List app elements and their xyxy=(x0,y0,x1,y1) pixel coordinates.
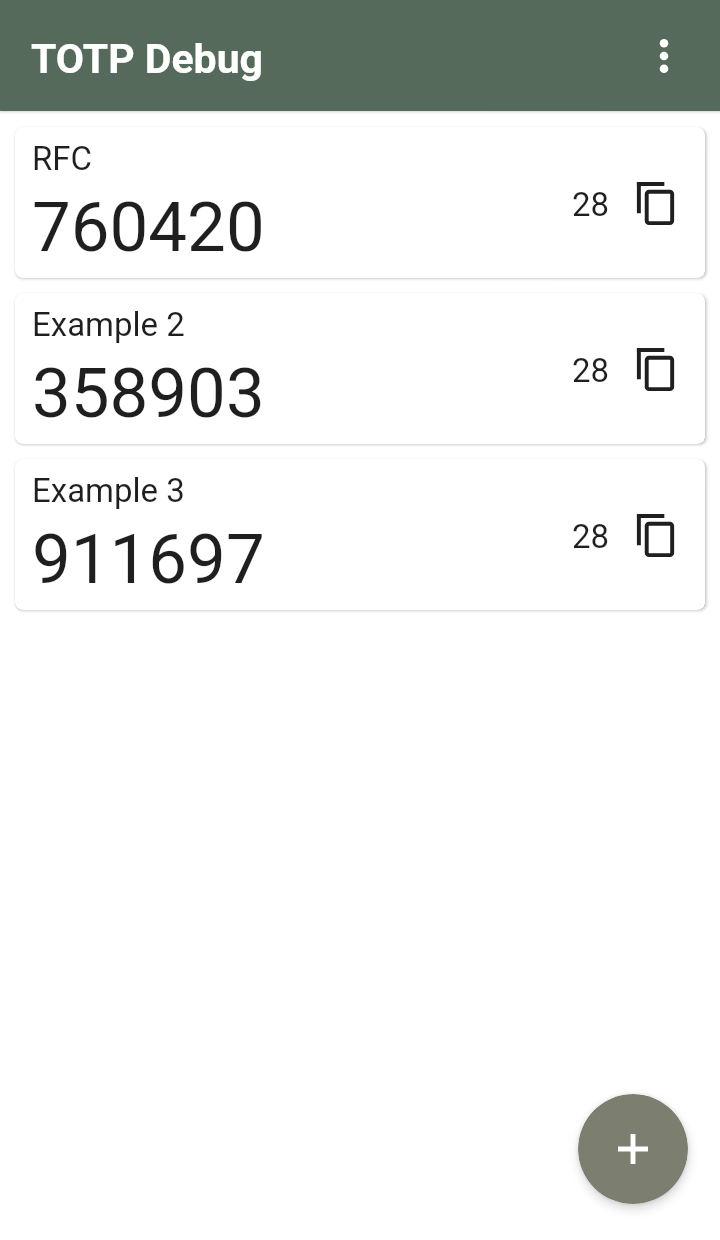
staticText: 28 xyxy=(572,185,610,224)
button[interactable]: Example 2 xyxy=(15,293,705,444)
button[interactable]: Copy code xyxy=(626,505,686,565)
staticText: 28 xyxy=(572,517,610,556)
staticText: 911697 xyxy=(32,519,265,600)
staticText: Example 3 xyxy=(32,471,185,510)
staticText: 358903 xyxy=(32,353,265,434)
button[interactable]: More options xyxy=(628,20,700,92)
staticText: Example 2 xyxy=(32,305,185,344)
button[interactable]: Example 3 xyxy=(15,459,705,610)
button[interactable]: Add xyxy=(578,1094,688,1204)
staticText: RFC xyxy=(32,139,93,178)
staticText: 760420 xyxy=(32,187,265,268)
button[interactable]: RFC xyxy=(15,127,705,278)
staticText: 28 xyxy=(572,351,610,390)
button[interactable]: Copy code xyxy=(626,173,686,233)
staticText: TOTP Debug xyxy=(31,35,264,83)
button[interactable]: Copy code xyxy=(626,339,686,399)
